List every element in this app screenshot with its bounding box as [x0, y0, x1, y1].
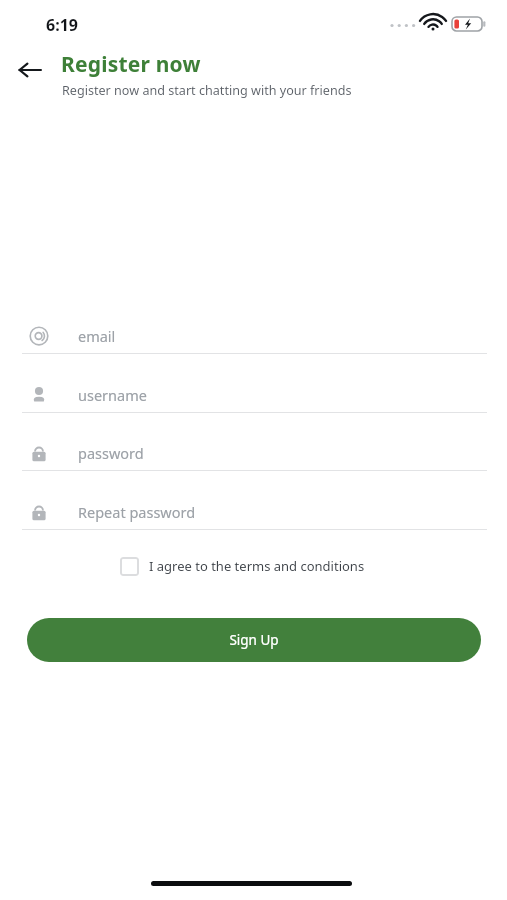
staticText: email — [78, 326, 116, 346]
staticText: username — [78, 385, 147, 405]
staticText: Register now and start chatting with you… — [62, 82, 352, 99]
button[interactable]: Repeat password — [22, 494, 487, 530]
staticText: password — [78, 443, 144, 463]
staticText: 6:19 — [46, 14, 78, 36]
staticText: Repeat password — [78, 502, 196, 522]
button[interactable]: I agree to the terms and conditions — [120, 552, 365, 580]
staticText: Register now — [61, 50, 201, 79]
staticText: I agree to the terms and conditions — [149, 557, 365, 575]
staticText: Sign Up — [229, 631, 279, 649]
button[interactable]: email — [22, 318, 487, 354]
button[interactable]: Back — [10, 50, 50, 90]
button[interactable]: username — [22, 377, 487, 413]
button[interactable]: password — [22, 435, 487, 471]
button[interactable]: Sign Up — [27, 618, 481, 662]
